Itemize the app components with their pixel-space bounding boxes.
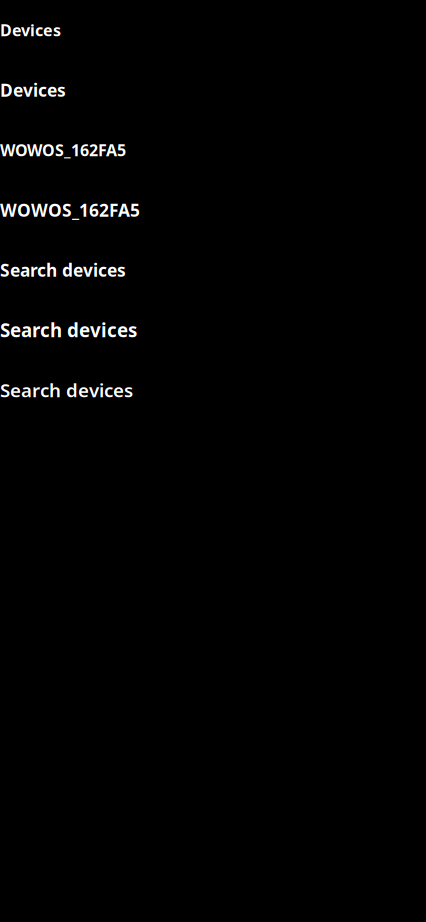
staticText: Search devices xyxy=(0,258,126,281)
staticText: Search devices xyxy=(0,318,137,342)
staticText: WOWOS_162FA5 xyxy=(0,198,140,221)
staticText: Search devices xyxy=(0,378,133,402)
staticText: Devices xyxy=(0,19,61,41)
staticText: WOWOS_162FA5 xyxy=(0,139,126,161)
staticText: Devices xyxy=(0,78,66,101)
